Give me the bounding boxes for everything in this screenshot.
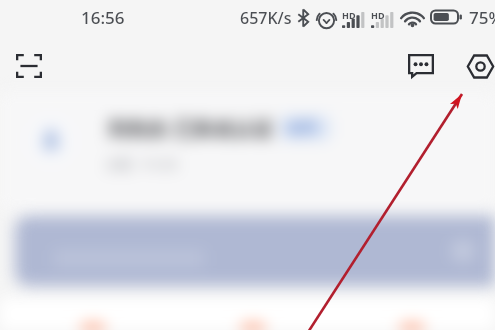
button[interactable]: [78, 324, 108, 330]
button[interactable]: [238, 324, 268, 330]
staticText: 余额 ￥0.00: [106, 155, 178, 173]
button[interactable]: Settings: [460, 46, 495, 86]
staticText: HD: [371, 9, 385, 21]
button[interactable]: Messages: [401, 46, 441, 86]
staticText: 16:56: [81, 6, 125, 29]
button[interactable]: [26, 116, 76, 166]
button[interactable]: 会员: [280, 116, 330, 140]
staticText: 75%: [469, 6, 495, 29]
staticText: 657K/s: [240, 7, 292, 29]
button[interactable]: [15, 216, 495, 286]
button[interactable]: 刘先生 已实名认证: [0, 92, 495, 210]
staticText: 会员: [287, 119, 315, 137]
staticText: 刘先生 已实名认证: [108, 115, 274, 142]
button[interactable]: Scan code: [9, 46, 49, 86]
staticText: HD: [342, 9, 356, 21]
button[interactable]: [397, 324, 427, 330]
